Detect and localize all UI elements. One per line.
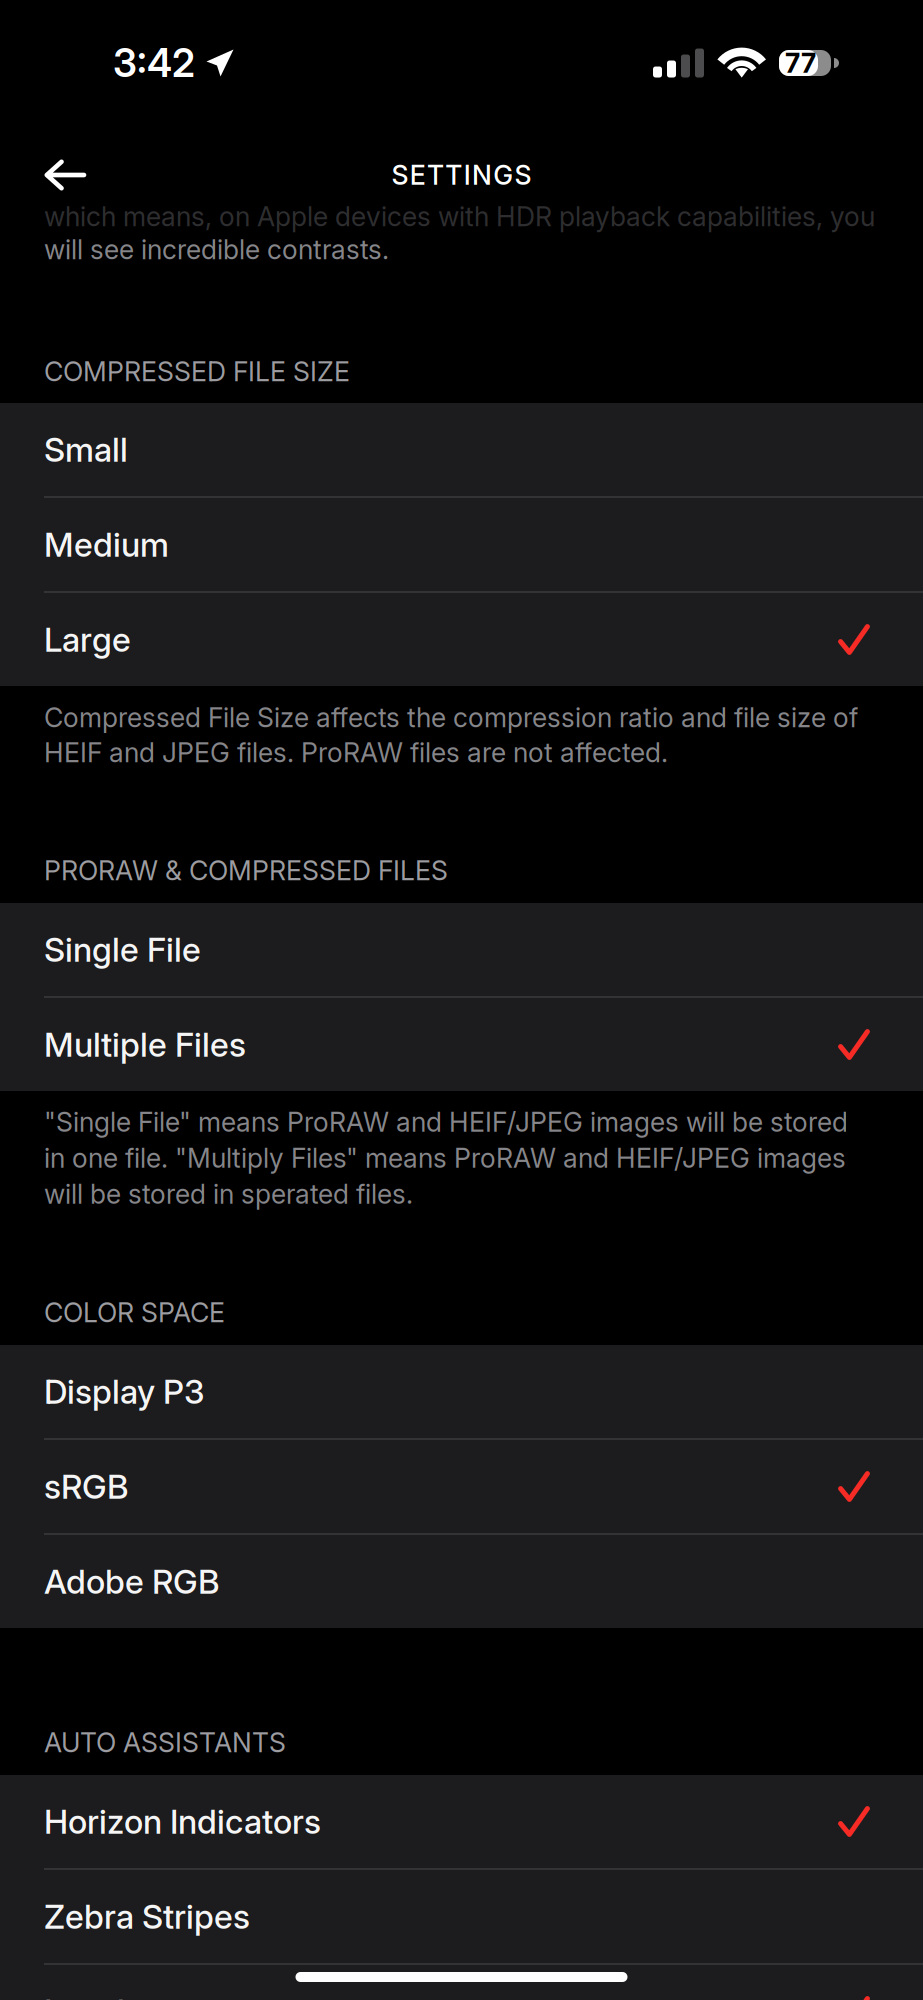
staticText: AUTO ASSISTANTS (44, 1726, 286, 1759)
button[interactable]: Display P3 (0, 1345, 923, 1438)
staticText: will see incredible contrasts. (44, 233, 389, 266)
staticText: Large (44, 619, 131, 660)
button[interactable]: Multiple Files (0, 998, 923, 1091)
staticText: "Single File" means ProRAW and HEIF/JPEG… (44, 1106, 848, 1138)
button[interactable]: Zebra Stripes (0, 1870, 923, 1963)
button[interactable]: Back (0, 150, 112, 200)
staticText: sRGB (44, 1466, 129, 1507)
staticText: Zebra Stripes (44, 1896, 250, 1937)
staticText: Adobe RGB (44, 1561, 220, 1602)
staticText: SETTINGS (391, 159, 532, 191)
staticText: Horizon Indicators (44, 1801, 321, 1842)
staticText: which means, on Apple devices with HDR p… (44, 200, 875, 233)
button[interactable]: Horizon Indicators (0, 1775, 923, 1868)
staticText: Compressed File Size affects the compres… (44, 701, 858, 734)
staticText: PRORAW & COMPRESSED FILES (44, 854, 448, 887)
staticText: 3:42 (113, 40, 195, 86)
staticText: COLOR SPACE (44, 1296, 225, 1329)
button[interactable]: Large (0, 593, 923, 686)
button[interactable]: Level (0, 1965, 923, 2000)
staticText: COMPRESSED FILE SIZE (44, 355, 350, 388)
staticText: Medium (44, 524, 169, 565)
button[interactable]: Medium (0, 498, 923, 591)
staticText: Single File (44, 929, 201, 970)
staticText: 77 (785, 47, 816, 79)
staticText: will be stored in sperated files. (44, 1178, 413, 1210)
button[interactable]: Single File (0, 903, 923, 996)
staticText: Level (44, 1991, 125, 2000)
staticText: Multiple Files (44, 1024, 246, 1065)
staticText: in one file. "Multiply Files" means ProR… (44, 1142, 846, 1174)
button[interactable]: Adobe RGB (0, 1535, 923, 1628)
button[interactable]: Small (0, 403, 923, 496)
staticText: Display P3 (44, 1371, 204, 1412)
button[interactable]: sRGB (0, 1440, 923, 1533)
staticText: Small (44, 429, 128, 470)
staticText: HEIF and JPEG files. ProRAW files are no… (44, 736, 668, 769)
